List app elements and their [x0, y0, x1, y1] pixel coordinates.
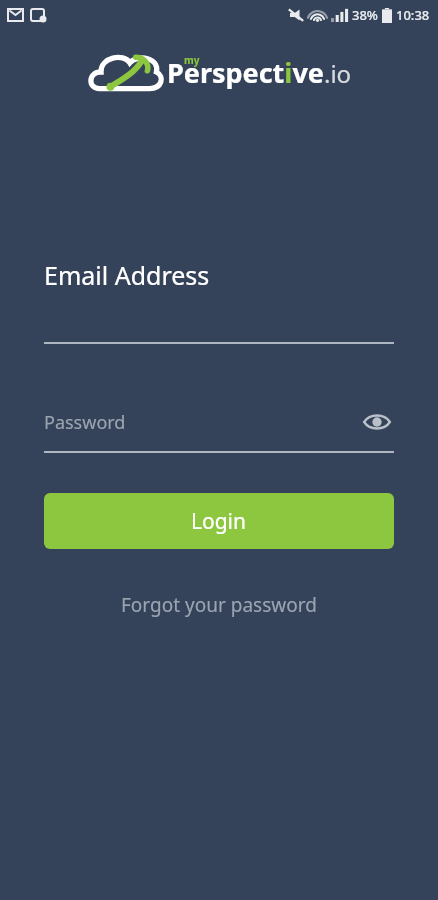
- button[interactable]: Forgot your password: [109, 586, 329, 624]
- staticText: 38%: [352, 6, 378, 24]
- staticText: Perspective.io: [167, 54, 352, 91]
- button[interactable]: Login: [44, 493, 394, 549]
- staticText: Email Address: [44, 258, 210, 292]
- staticText: Forgot your password: [121, 592, 317, 618]
- staticText: 10:38: [396, 6, 430, 24]
- staticText: my: [184, 53, 200, 67]
- staticText: Login: [191, 507, 247, 536]
- staticText: Password: [44, 410, 126, 435]
- button[interactable]: Show password: [360, 405, 394, 439]
- button[interactable]: Password: [44, 400, 394, 444]
